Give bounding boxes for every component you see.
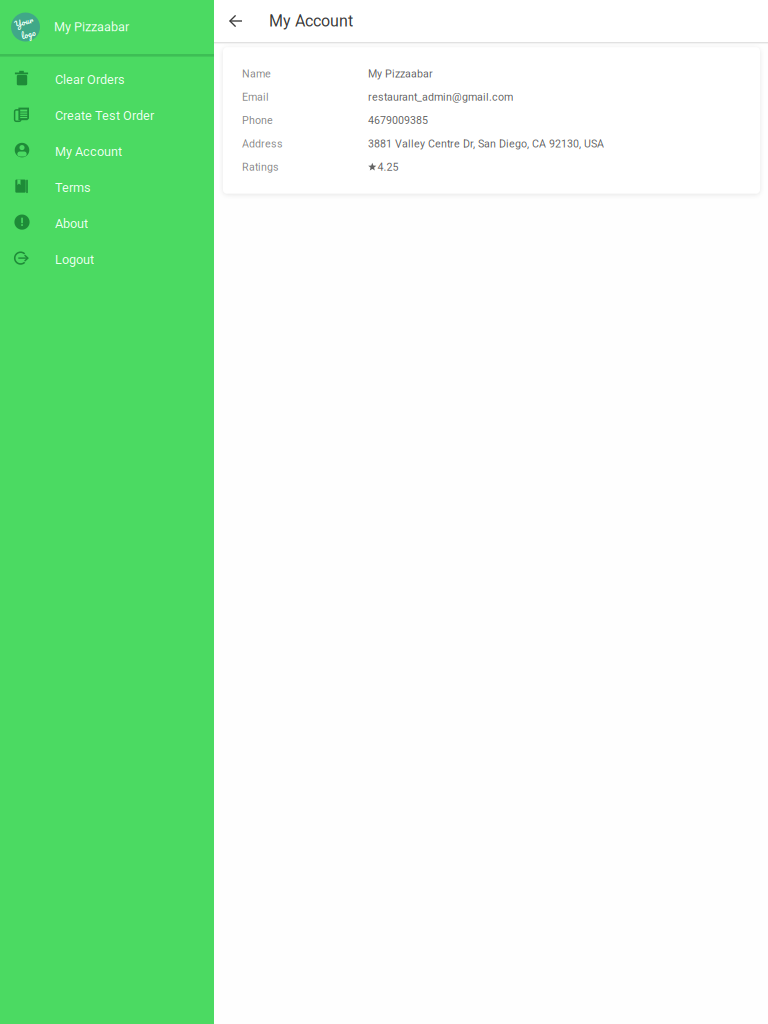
staticText: Your	[16, 14, 35, 29]
staticText: Terms	[55, 180, 91, 195]
button[interactable]: My Pizzaabar	[0, 0, 214, 54]
staticText: My Account	[269, 12, 353, 30]
button[interactable]: Clear Orders	[0, 62, 214, 98]
button[interactable]: Terms	[0, 170, 214, 206]
staticText: 4.25	[378, 161, 399, 173]
staticText: restaurant_admin@gmail.com	[368, 91, 513, 103]
button[interactable]: Back	[229, 0, 269, 42]
button[interactable]: About	[0, 206, 214, 242]
staticText: My Pizzaabar	[368, 68, 433, 80]
staticText: Name	[242, 68, 271, 80]
staticText: 4679009385	[368, 114, 428, 127]
staticText: Clear Orders	[55, 72, 125, 87]
staticText: logo	[19, 27, 34, 42]
staticText: My Account	[55, 144, 122, 159]
button[interactable]: My Account	[0, 134, 214, 170]
button[interactable]: Logout	[0, 242, 214, 278]
staticText: Logout	[55, 252, 94, 267]
staticText: Address	[242, 137, 283, 150]
staticText: Create Test Order	[55, 108, 154, 123]
staticText: Email	[242, 91, 269, 103]
button[interactable]: Create Test Order	[0, 98, 214, 134]
staticText: Ratings	[242, 161, 279, 173]
staticText: 3881 Valley Centre Dr, San Diego, CA 921…	[368, 137, 604, 150]
staticText: My Pizzaabar	[54, 20, 129, 34]
staticText: About	[55, 216, 88, 231]
staticText: Phone	[242, 114, 273, 127]
